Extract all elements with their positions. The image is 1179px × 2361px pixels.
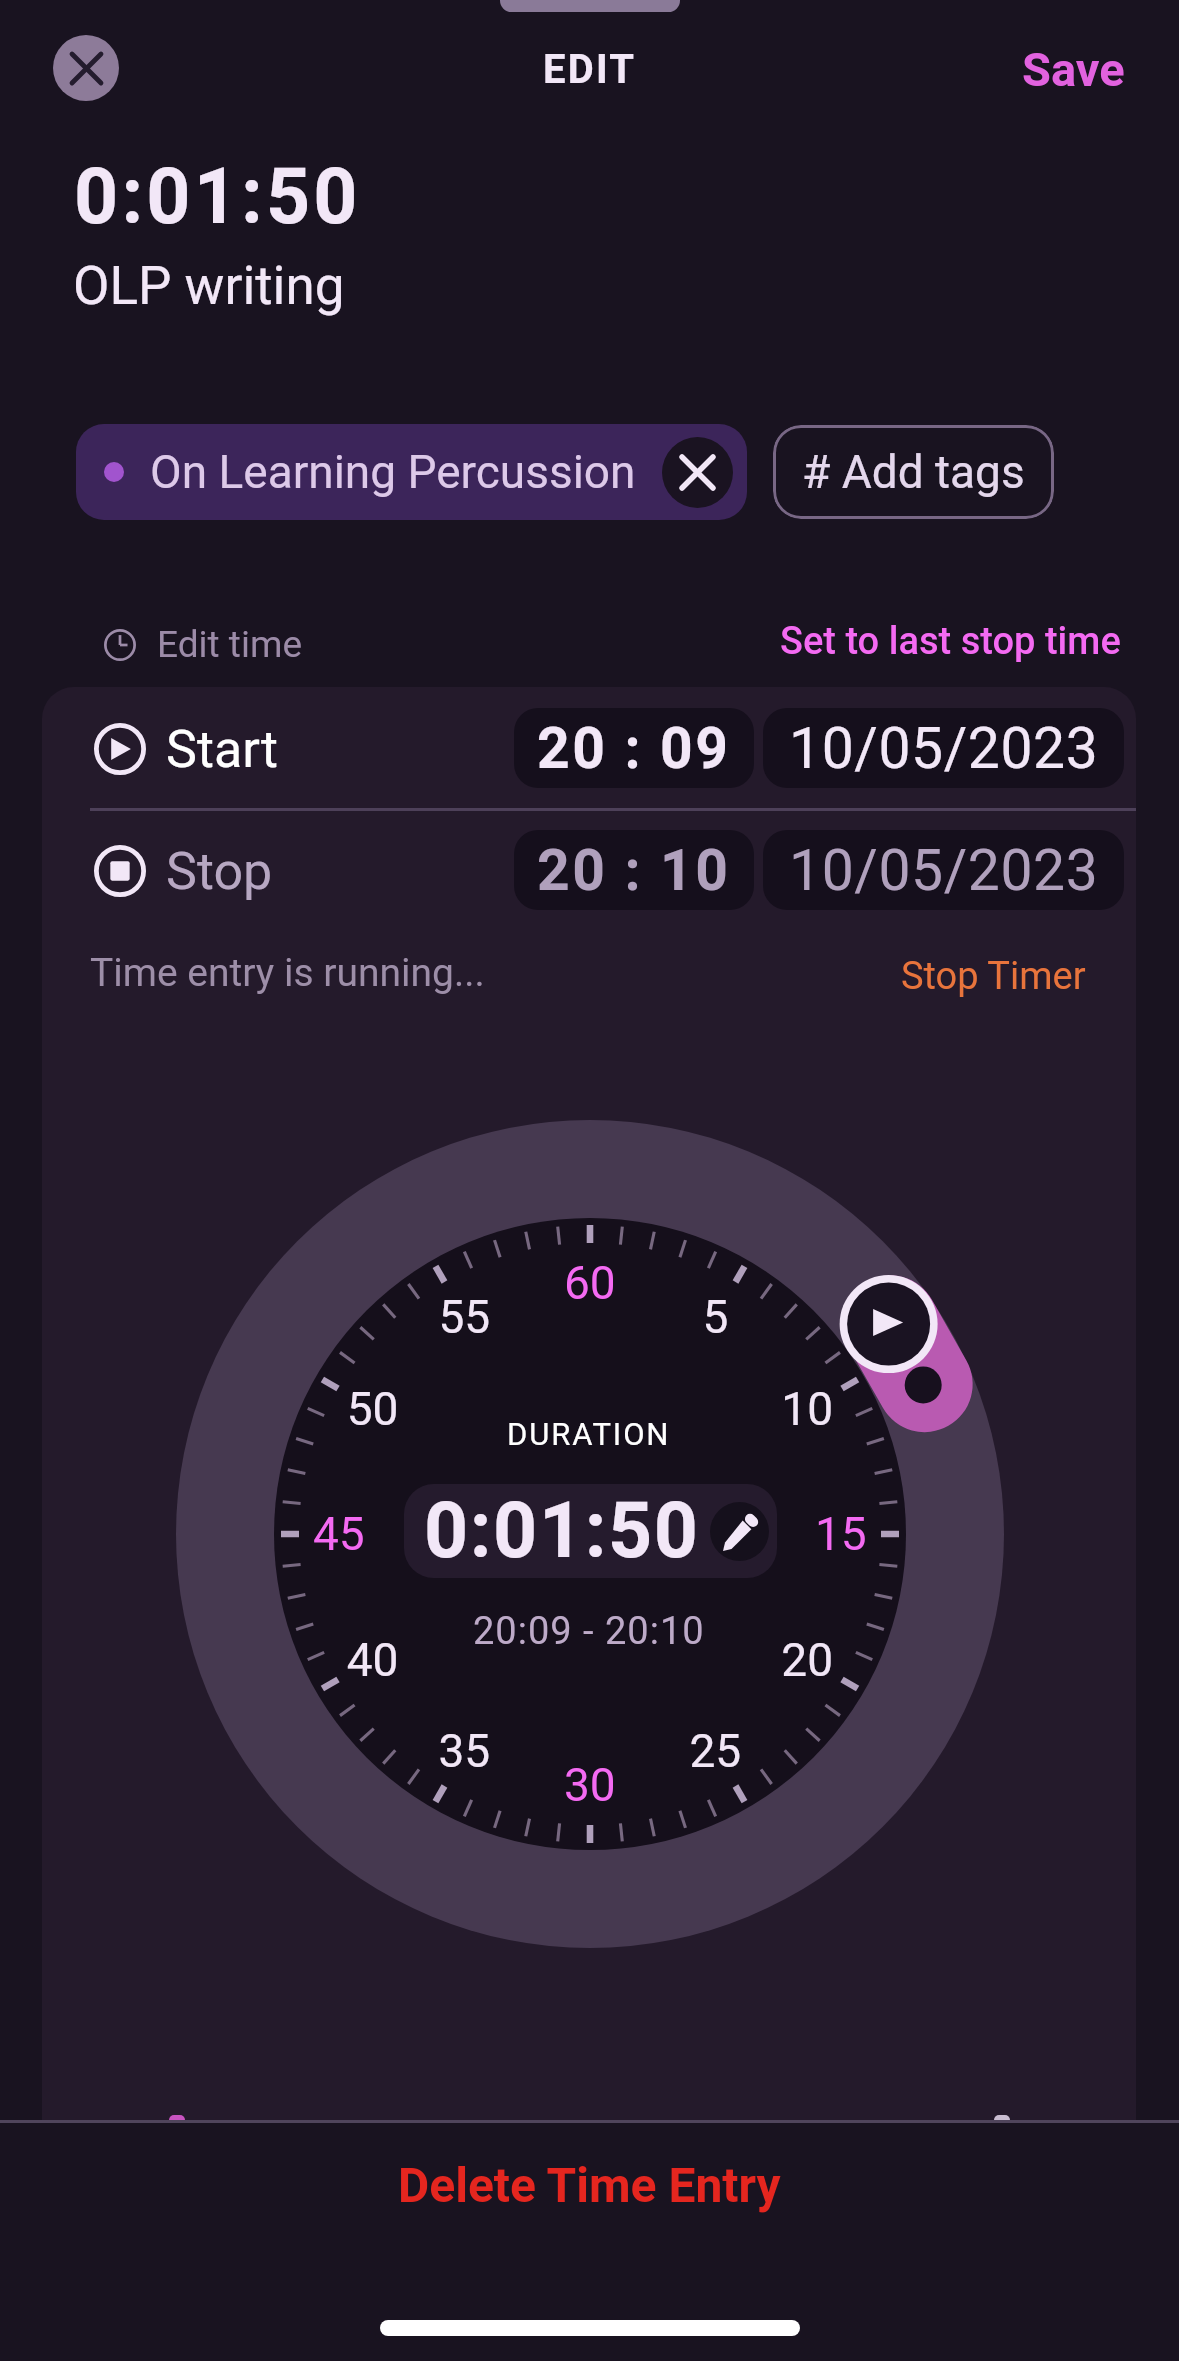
staticText: Time entry is running...: [90, 950, 485, 996]
staticText: 0:01:50: [424, 1486, 700, 1576]
staticText: # Add tags: [802, 445, 1025, 499]
button[interactable]: 0:01:50: [404, 1484, 777, 1578]
staticText: 20:09 - 20:10: [473, 1609, 705, 1654]
staticText: 20 : 09: [537, 715, 731, 782]
button[interactable]: 20 : 10: [514, 830, 754, 910]
staticText: Stop: [166, 841, 273, 902]
button[interactable]: Start: [42, 687, 1136, 809]
staticText: DURATION: [507, 1416, 671, 1452]
button[interactable]: Edit duration: [710, 1502, 769, 1561]
button[interactable]: Delete Time Entry: [0, 2122, 1179, 2247]
button[interactable]: Stop Timer: [897, 950, 1090, 1003]
button[interactable]: 10/05/2023: [763, 830, 1124, 910]
button[interactable]: Remove tag: [662, 437, 733, 508]
staticText: Start: [166, 719, 279, 780]
button[interactable]: Set to last stop time: [776, 615, 1125, 668]
staticText: 20 : 10: [537, 837, 731, 904]
button[interactable]: 10/05/2023: [763, 708, 1124, 788]
button[interactable]: 20 : 09: [514, 708, 754, 788]
button[interactable]: # Add tags: [773, 425, 1054, 519]
button[interactable]: Stop: [42, 809, 1136, 931]
staticText: 0:01:50: [74, 152, 361, 242]
staticText: EDIT: [543, 46, 637, 93]
button[interactable]: On Learning Percussion: [76, 424, 747, 520]
staticText: 10/05/2023: [789, 837, 1099, 904]
button[interactable]: Save: [1010, 30, 1137, 109]
staticText: Delete Time Entry: [398, 2157, 781, 2213]
staticText: 10/05/2023: [789, 715, 1099, 782]
button[interactable]: Close: [53, 35, 119, 101]
staticText: On Learning Percussion: [150, 445, 636, 499]
staticText: Edit time: [157, 623, 303, 666]
staticText: Stop Timer: [901, 954, 1086, 999]
staticText: Save: [1022, 42, 1125, 97]
staticText: OLP writing: [73, 255, 345, 317]
staticText: Set to last stop time: [780, 619, 1121, 664]
